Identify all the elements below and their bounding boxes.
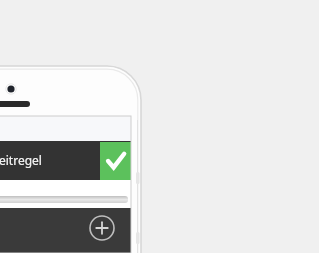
button[interactable]: Hinzufügen	[88, 214, 116, 242]
button[interactable]: Wochen-Arbeitszeitregel	[0, 141, 131, 180]
button[interactable]	[0, 196, 128, 203]
button[interactable]: Bestätigen	[100, 142, 131, 180]
staticText: Wochen-Arbeitszeitregel	[0, 152, 42, 168]
